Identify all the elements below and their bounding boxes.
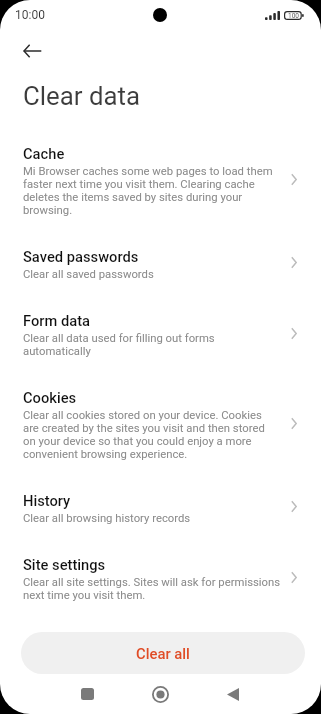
button[interactable]: Back [213,674,253,714]
staticText: 10:00 [15,8,45,22]
staticText: Cache [23,145,65,162]
staticText: Clear all [136,645,190,662]
staticText: Saved passwords [23,248,139,265]
button[interactable]: Cookies [0,389,321,461]
staticText: History [23,492,71,509]
button[interactable]: Cache [0,145,321,217]
staticText: Clear all site settings. Sites will ask … [23,576,281,602]
staticText: 100 [288,12,299,20]
staticText: Clear all saved passwords [23,268,154,281]
staticText: Site settings [23,556,106,573]
button[interactable]: History [0,492,321,525]
button[interactable]: Clear all [21,632,305,674]
staticText: Mi Browser caches some web pages to load… [23,165,273,217]
button[interactable]: Form data [0,312,321,358]
button[interactable]: Site settings [0,556,321,602]
staticText: Cookies [23,389,77,406]
button[interactable]: Recent apps [67,674,107,714]
staticText: Clear data [23,81,140,111]
staticText: Clear all cookies stored on your device.… [23,409,265,461]
staticText: Clear all data used for filling out form… [23,332,215,358]
button[interactable]: Back [14,33,50,69]
button[interactable]: Saved passwords [0,248,321,281]
button[interactable]: Home [140,674,180,714]
staticText: Form data [23,312,90,329]
staticText: Clear all browsing history records [23,512,191,525]
